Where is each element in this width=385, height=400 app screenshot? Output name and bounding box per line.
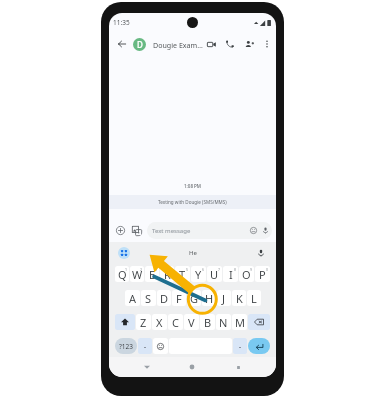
staticText: 0	[266, 267, 269, 272]
staticText: 8	[234, 267, 237, 272]
staticText: Y	[195, 267, 202, 282]
staticText: Dougie Exam…	[153, 40, 203, 50]
staticText: A	[129, 291, 137, 306]
staticText: M	[235, 315, 245, 330]
button[interactable]: Back	[115, 37, 129, 51]
button[interactable]: Q	[115, 266, 129, 282]
staticText: Texting with Dougie (SMS/MMS)	[158, 199, 227, 205]
button[interactable]: W	[130, 266, 144, 282]
button[interactable]: L	[247, 290, 261, 306]
button[interactable]: Keyboard apps	[118, 247, 130, 259]
staticText: L	[251, 291, 257, 306]
button[interactable]: O	[239, 266, 254, 282]
button[interactable]: Add person	[242, 37, 256, 51]
staticText: O	[242, 267, 251, 282]
staticText: Q	[118, 267, 127, 282]
button[interactable]: X	[152, 314, 167, 330]
staticText: He	[189, 249, 197, 257]
button[interactable]: Period	[233, 338, 247, 354]
button[interactable]: Home	[185, 360, 199, 374]
staticText: S	[145, 291, 152, 306]
staticText: Z	[140, 315, 147, 330]
button[interactable]: B	[200, 314, 215, 330]
button[interactable]: J	[217, 290, 231, 306]
button[interactable]: I	[223, 266, 238, 282]
button[interactable]: H	[202, 290, 216, 306]
staticText: W	[132, 267, 143, 282]
button[interactable]: E	[145, 266, 159, 282]
staticText: D	[160, 291, 169, 306]
button[interactable]: R	[160, 266, 174, 282]
button[interactable]: Backspace	[248, 314, 270, 330]
button[interactable]: More options	[260, 37, 274, 51]
button[interactable]: T	[175, 266, 190, 282]
button[interactable]: M	[232, 314, 247, 330]
button[interactable]: Comma	[138, 338, 152, 354]
staticText: R	[164, 267, 171, 282]
button[interactable]	[153, 338, 168, 354]
staticText: T	[179, 267, 186, 282]
button[interactable]: Add attachment	[114, 224, 127, 237]
staticText: E	[149, 267, 156, 282]
button[interactable]: Shift	[115, 314, 135, 330]
button[interactable]: Y	[191, 266, 206, 282]
button[interactable]: K	[232, 290, 246, 306]
button[interactable]: N	[216, 314, 231, 330]
button[interactable]: ?123	[115, 338, 137, 354]
button[interactable]: S	[141, 290, 156, 306]
staticText: 4	[170, 267, 173, 272]
staticText: V	[188, 315, 195, 330]
staticText: U	[210, 267, 219, 282]
staticText: B	[204, 315, 212, 330]
staticText: P	[259, 267, 266, 282]
button[interactable]: Call	[223, 37, 237, 51]
staticText: K	[236, 291, 243, 306]
button[interactable]: D	[133, 38, 203, 51]
button[interactable]: Enter	[248, 338, 270, 354]
staticText: F	[176, 291, 182, 306]
button[interactable]: Back	[140, 360, 154, 374]
button[interactable]: C	[168, 314, 183, 330]
staticText: C	[172, 315, 179, 330]
staticText: ?123	[119, 342, 133, 351]
staticText: 1:08 PM	[184, 183, 201, 189]
button[interactable]: Recents	[231, 360, 245, 374]
button[interactable]: V	[184, 314, 199, 330]
button[interactable]: D	[157, 290, 171, 306]
button[interactable]: Gallery	[130, 224, 143, 237]
staticText: H	[205, 291, 214, 306]
staticText: 11:35	[113, 18, 130, 27]
staticText: N	[219, 315, 228, 330]
button[interactable]: G	[187, 290, 201, 306]
button[interactable]: F	[172, 290, 186, 306]
staticText: 3	[155, 267, 158, 272]
staticText: Text message	[152, 227, 191, 235]
staticText: 6	[202, 267, 205, 272]
button[interactable]: Voice input	[255, 247, 267, 259]
button[interactable]: U	[207, 266, 222, 282]
staticText: G	[190, 291, 199, 306]
button[interactable]: Z	[136, 314, 151, 330]
staticText: J	[222, 291, 226, 306]
staticText: 9	[250, 267, 253, 272]
staticText: 5	[186, 267, 189, 272]
staticText: D	[137, 39, 143, 50]
button[interactable]: Video call	[204, 37, 218, 51]
staticText: 2	[140, 267, 143, 272]
button[interactable]: Text message	[147, 222, 272, 239]
button[interactable]: P	[255, 266, 270, 282]
staticText: I	[229, 267, 233, 282]
staticText: 1	[125, 267, 128, 272]
staticText: X	[156, 315, 163, 330]
staticText: 7	[218, 267, 221, 272]
button[interactable]: A	[125, 290, 140, 306]
